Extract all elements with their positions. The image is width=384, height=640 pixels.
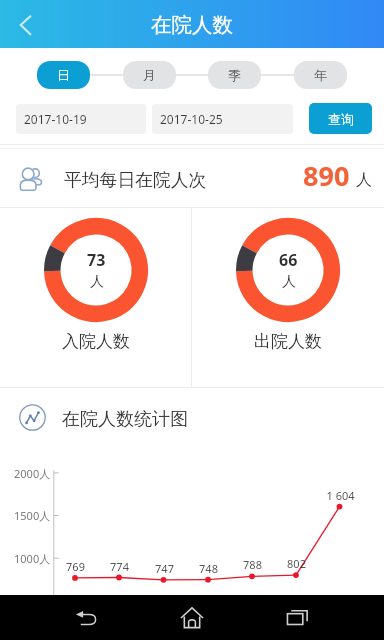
staticText: 1500人 — [14, 508, 51, 523]
staticText: 774 — [110, 559, 129, 574]
staticText: 人 — [356, 170, 372, 190]
staticText: 2017-10-25 — [160, 111, 223, 127]
staticText: 人 — [90, 273, 104, 291]
staticText: 748 — [199, 561, 218, 576]
staticText: 1 604 — [326, 488, 355, 503]
staticText: 入院人数 — [62, 331, 130, 352]
staticText: 出院人数 — [254, 331, 322, 352]
staticText: 平均每日在院人次 — [64, 169, 207, 191]
button[interactable]: Back — [0, 0, 48, 48]
button[interactable]: 2017-10-25 — [152, 104, 293, 134]
staticText: 日 — [57, 67, 70, 83]
button[interactable]: 年 — [294, 61, 347, 89]
staticText: 2000人 — [14, 466, 51, 481]
staticText: 季 — [228, 67, 241, 83]
button[interactable]: 73 — [0, 208, 191, 387]
staticText: 1000人 — [14, 551, 51, 566]
staticText: 73 — [87, 249, 106, 271]
button[interactable]: 66 — [192, 208, 384, 387]
staticText: 年 — [314, 67, 327, 83]
staticText: 747 — [155, 561, 174, 576]
staticText: 查询 — [328, 111, 354, 127]
button[interactable]: Back — [62, 595, 110, 640]
button[interactable]: 查询 — [309, 103, 372, 134]
button[interactable]: Home — [168, 595, 216, 640]
staticText: 66 — [279, 249, 298, 271]
staticText: 在院人数统计图 — [62, 408, 188, 431]
button[interactable]: 季 — [208, 61, 261, 89]
staticText: 802 — [287, 556, 306, 571]
staticText: 在院人数 — [151, 12, 233, 38]
button[interactable]: Recent apps — [274, 595, 322, 640]
staticText: 890 — [303, 157, 350, 194]
staticText: 769 — [66, 559, 85, 574]
staticText: 2017-10-19 — [24, 111, 87, 127]
button[interactable]: 日 — [37, 61, 90, 89]
staticText: 788 — [243, 557, 262, 572]
button[interactable]: 月 — [123, 61, 176, 89]
staticText: 人 — [282, 273, 296, 291]
button[interactable]: 2017-10-19 — [16, 104, 146, 134]
staticText: 月 — [143, 67, 156, 83]
